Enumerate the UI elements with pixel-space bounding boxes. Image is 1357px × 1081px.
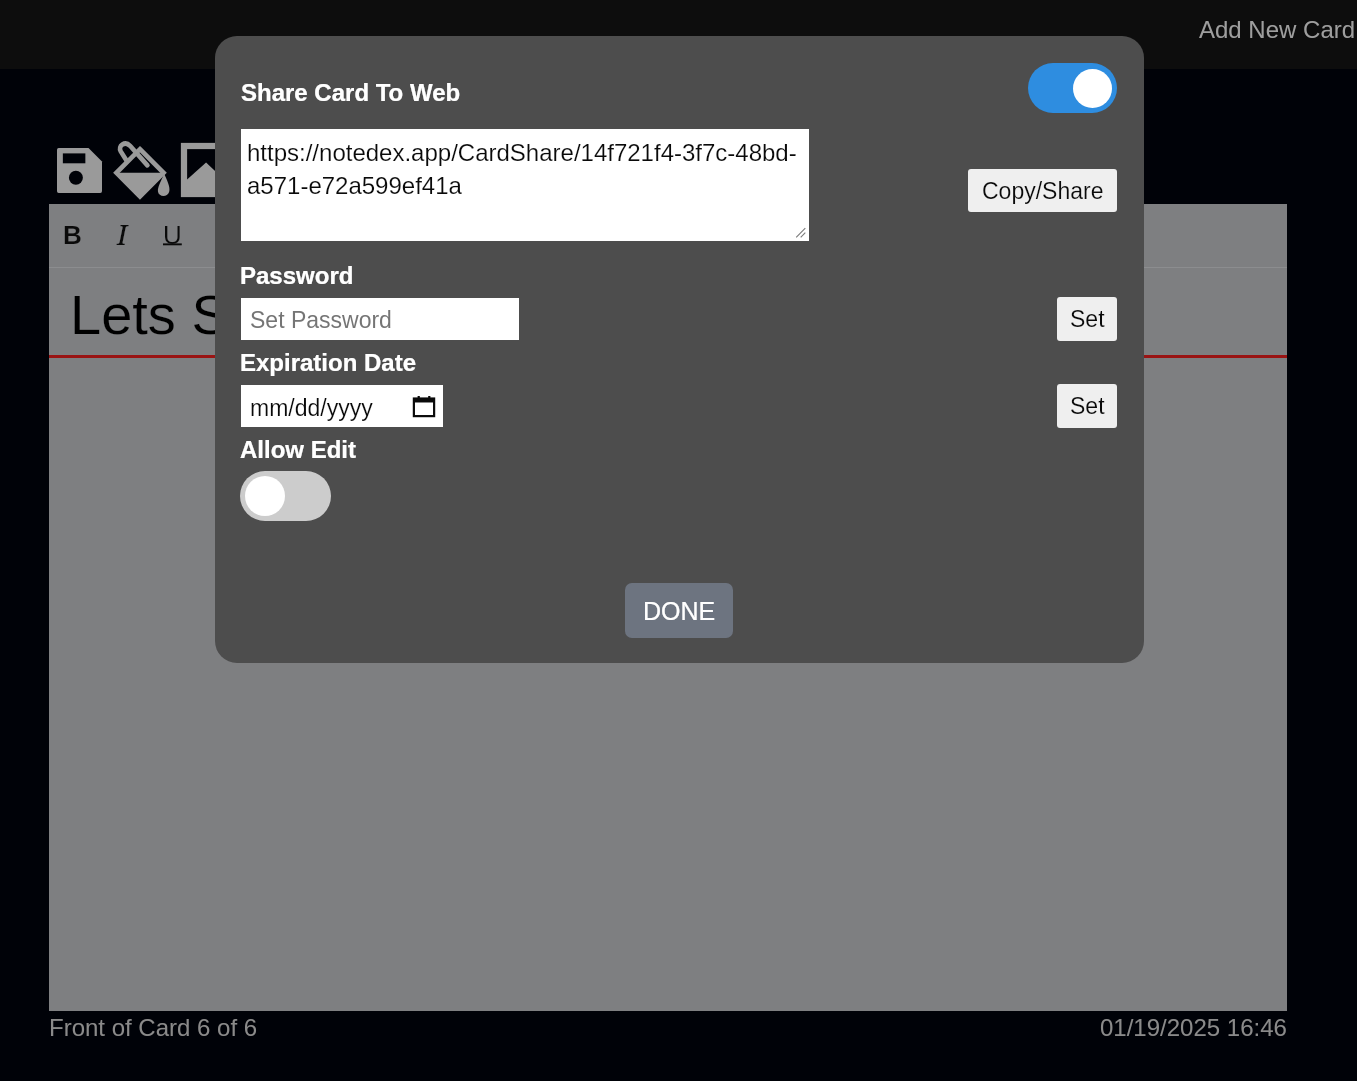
button[interactable]: https://notedex.app/CardShare/14f721f4-3… xyxy=(241,129,809,241)
staticText: Lets S xyxy=(70,283,229,346)
button[interactable]: I xyxy=(97,210,147,258)
staticText: Set xyxy=(1070,393,1105,419)
button[interactable]: U xyxy=(147,210,197,258)
button[interactable]: Save xyxy=(57,148,102,193)
button[interactable]: Set xyxy=(1057,297,1117,341)
button[interactable]: mm/dd/yyyy xyxy=(241,385,443,427)
button[interactable]: Set Password xyxy=(241,298,519,340)
staticText: U xyxy=(163,220,182,249)
staticText: Set Password xyxy=(250,307,392,333)
button[interactable]: DONE xyxy=(625,583,733,638)
staticText: Expiration Date xyxy=(240,349,417,376)
button[interactable]: Allow edit toggle xyxy=(240,471,331,521)
staticText: Copy/Share xyxy=(982,178,1104,204)
button[interactable]: Fill colour xyxy=(113,139,175,201)
button[interactable]: Copy/Share xyxy=(968,169,1117,212)
staticText: Front of Card 6 of 6 xyxy=(49,1014,258,1041)
button[interactable]: B xyxy=(47,210,97,258)
staticText: 01/19/2025 16:46 xyxy=(1100,1014,1287,1041)
staticText: Password xyxy=(240,262,354,289)
staticText: Share Card To Web xyxy=(241,79,461,106)
button[interactable]: Add New Card xyxy=(1199,16,1356,43)
staticText: B xyxy=(63,220,82,249)
staticText: I xyxy=(117,216,128,253)
button[interactable]: Set xyxy=(1057,384,1117,428)
staticText: DONE xyxy=(643,597,716,625)
button[interactable]: Share to web toggle xyxy=(1028,63,1117,113)
staticText: Allow Edit xyxy=(240,436,356,463)
button[interactable]: Insert image xyxy=(184,146,232,194)
staticText: mm/dd/yyyy xyxy=(250,395,373,421)
staticText: Set xyxy=(1070,306,1105,332)
staticText: https://notedex.app/CardShare/14f721f4-3… xyxy=(247,139,797,199)
